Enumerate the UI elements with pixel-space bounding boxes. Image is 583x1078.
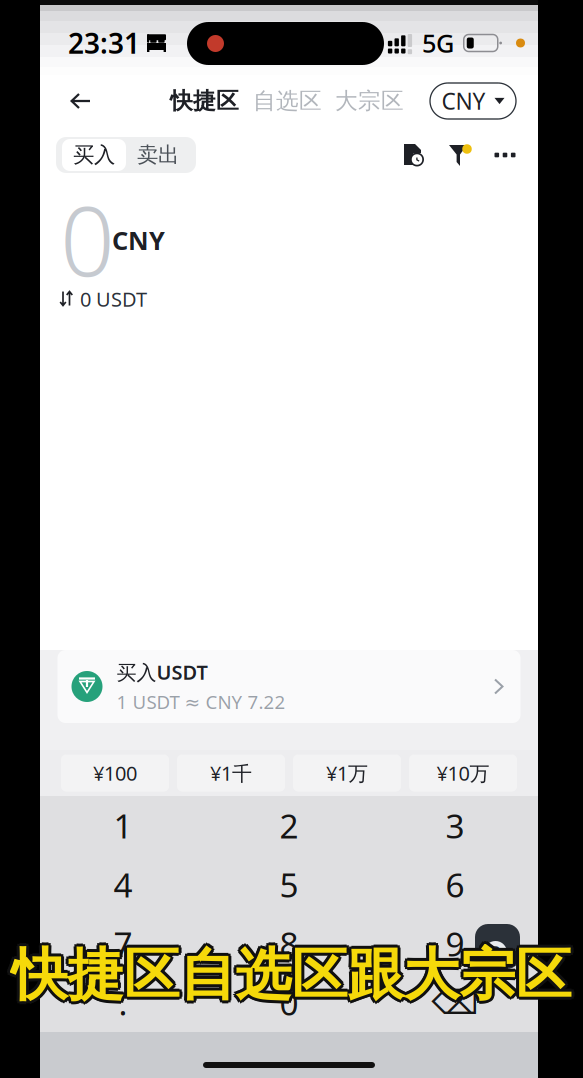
- button[interactable]: 快捷区: [170, 79, 239, 123]
- button[interactable]: 6: [372, 855, 538, 914]
- button[interactable]: 买入USDT: [57, 650, 520, 723]
- staticText: 快捷区自选区跟大宗区: [14, 938, 574, 1007]
- staticText: 23:31: [68, 24, 140, 62]
- staticText: 快捷区自选区跟大宗区: [9, 943, 569, 1012]
- staticText: CNY: [112, 223, 165, 257]
- button[interactable]: 1: [40, 796, 206, 855]
- staticText: ¥10万: [436, 760, 489, 786]
- button[interactable]: 3: [372, 796, 538, 855]
- staticText: 自选区: [253, 87, 322, 115]
- button[interactable]: More options: [494, 143, 516, 167]
- staticText: 2: [279, 803, 298, 848]
- staticText: ⌫: [431, 984, 478, 1021]
- button[interactable]: .: [40, 973, 206, 1032]
- button[interactable]: CNY: [430, 83, 516, 119]
- button[interactable]: 9: [372, 914, 538, 973]
- button[interactable]: 买入: [62, 139, 126, 171]
- staticText: 5G: [422, 26, 454, 60]
- staticText: 1 USDT ≈ CNY 7.22: [116, 689, 285, 714]
- button[interactable]: ¥100: [61, 754, 169, 791]
- staticText: 快捷区: [170, 87, 239, 115]
- button[interactable]: 4: [40, 855, 206, 914]
- staticText: CNY: [441, 86, 485, 116]
- staticText: 7: [113, 921, 132, 966]
- button[interactable]: 8: [206, 914, 372, 973]
- staticText: 快捷区自选区跟大宗区: [14, 941, 574, 1009]
- staticText: 8: [279, 921, 298, 966]
- staticText: 快捷区自选区跟大宗区: [11, 941, 571, 1009]
- button[interactable]: 7: [40, 914, 206, 973]
- staticText: 大宗区: [335, 87, 404, 115]
- button[interactable]: 自选区: [253, 79, 322, 123]
- staticText: ¥1千: [210, 760, 252, 786]
- staticText: .: [118, 980, 127, 1025]
- staticText: 4: [113, 862, 132, 907]
- staticText: 快捷区自选区跟大宗区: [11, 944, 571, 1012]
- staticText: ¥1万: [326, 760, 368, 786]
- staticText: 6: [445, 862, 464, 907]
- button[interactable]: Order history: [404, 143, 425, 167]
- staticText: 卖出: [137, 142, 179, 168]
- staticText: 买入USDT: [116, 659, 207, 685]
- staticText: 买入: [73, 142, 115, 168]
- staticText: ¥100: [93, 760, 137, 786]
- staticText: 0: [60, 175, 115, 303]
- button[interactable]: 大宗区: [335, 79, 404, 123]
- staticText: 快捷区自选区跟大宗区: [8, 941, 568, 1009]
- button[interactable]: 2: [206, 796, 372, 855]
- button[interactable]: Back: [62, 79, 100, 123]
- button[interactable]: Filter: [449, 143, 470, 167]
- staticText: 快捷区自选区跟大宗区: [11, 938, 571, 1006]
- button[interactable]: ¥10万: [409, 754, 517, 791]
- staticText: 1: [113, 803, 132, 848]
- button[interactable]: ¥1万: [293, 754, 401, 791]
- staticText: 5: [279, 862, 298, 907]
- staticText: 9: [445, 921, 464, 966]
- button[interactable]: 0: [206, 973, 372, 1032]
- staticText: 快捷区自选区跟大宗区: [14, 943, 574, 1012]
- staticText: 0 USDT: [80, 286, 147, 312]
- staticText: ?: [490, 939, 500, 966]
- button[interactable]: 卖出: [126, 139, 190, 171]
- button[interactable]: Help: [475, 924, 520, 969]
- staticText: 3: [445, 803, 464, 848]
- button[interactable]: 5: [206, 855, 372, 914]
- staticText: 快捷区自选区跟大宗区: [9, 938, 569, 1007]
- staticText: 0: [279, 980, 298, 1025]
- button[interactable]: ⌫: [372, 973, 538, 1032]
- button[interactable]: ¥1千: [177, 754, 285, 791]
